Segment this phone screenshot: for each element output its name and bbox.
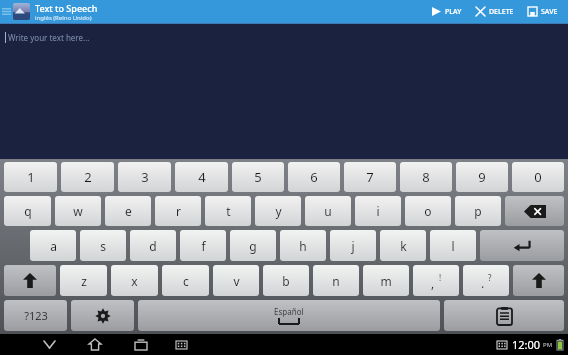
button[interactable]: n bbox=[313, 265, 359, 296]
staticText: 5 bbox=[254, 168, 262, 186]
staticText: 7 bbox=[366, 168, 374, 186]
staticText: ?123 bbox=[24, 308, 48, 323]
button[interactable]: t bbox=[205, 196, 251, 226]
staticText: a bbox=[50, 238, 57, 254]
button[interactable]: d bbox=[130, 230, 176, 261]
button[interactable]: j bbox=[330, 230, 376, 261]
staticText: l bbox=[451, 238, 455, 254]
staticText: d bbox=[149, 238, 157, 254]
staticText: ! bbox=[439, 272, 442, 283]
button[interactable]: f bbox=[180, 230, 226, 261]
staticText: i bbox=[376, 203, 380, 219]
button[interactable]: Shift bbox=[513, 265, 564, 296]
button[interactable]: g bbox=[230, 230, 276, 261]
button[interactable]: ?123 bbox=[4, 300, 67, 331]
button[interactable]: m bbox=[363, 265, 409, 296]
staticText: . bbox=[481, 275, 485, 291]
button[interactable]: 3 bbox=[118, 162, 171, 192]
staticText: b bbox=[282, 273, 290, 289]
staticText: PM bbox=[543, 341, 553, 349]
button[interactable]: q bbox=[4, 196, 51, 226]
button[interactable]: i bbox=[355, 196, 401, 226]
button[interactable]: Back bbox=[34, 334, 64, 355]
staticText: PLAY bbox=[445, 7, 462, 17]
button[interactable]: v bbox=[213, 265, 259, 296]
button[interactable]: r bbox=[155, 196, 201, 226]
staticText: Español bbox=[274, 306, 304, 317]
staticText: f bbox=[201, 238, 206, 254]
staticText: x bbox=[131, 273, 138, 289]
button[interactable]: 2 bbox=[61, 162, 114, 192]
button[interactable]: Enter bbox=[480, 230, 564, 261]
staticText: c bbox=[183, 273, 189, 289]
staticText: Text to Speech bbox=[35, 2, 98, 14]
button[interactable]: 9 bbox=[456, 162, 508, 192]
staticText: o bbox=[424, 203, 432, 219]
button[interactable]: k bbox=[380, 230, 426, 261]
staticText: n bbox=[332, 273, 340, 289]
staticText: 9 bbox=[478, 168, 486, 186]
button[interactable]: Shift bbox=[4, 265, 56, 296]
button[interactable]: Recent apps bbox=[126, 334, 156, 355]
staticText: m bbox=[380, 273, 392, 289]
staticText: 6 bbox=[310, 168, 318, 186]
button[interactable]: Navigate up bbox=[0, 0, 13, 23]
button[interactable]: Switch keyboard bbox=[168, 334, 194, 355]
button[interactable]: u bbox=[305, 196, 351, 226]
button[interactable]: 5 bbox=[232, 162, 284, 192]
button[interactable]: . bbox=[463, 265, 509, 296]
staticText: q bbox=[24, 203, 32, 219]
button[interactable]: Input settings bbox=[71, 300, 134, 331]
button[interactable]: l bbox=[430, 230, 476, 261]
staticText: r bbox=[176, 203, 181, 219]
staticText: u bbox=[324, 203, 332, 219]
button[interactable]: w bbox=[55, 196, 101, 226]
button[interactable]: c bbox=[162, 265, 209, 296]
button[interactable]: 8 bbox=[400, 162, 452, 192]
staticText: t bbox=[226, 203, 231, 219]
button[interactable]: o bbox=[405, 196, 451, 226]
button[interactable]: 1 bbox=[4, 162, 57, 192]
staticText: h bbox=[299, 238, 307, 254]
button[interactable]: 4 bbox=[175, 162, 228, 192]
button[interactable]: DELETE bbox=[469, 0, 521, 23]
staticText: ? bbox=[488, 272, 492, 283]
staticText: v bbox=[233, 273, 240, 289]
button[interactable]: 6 bbox=[288, 162, 340, 192]
button[interactable]: 0 bbox=[512, 162, 564, 192]
staticText: p bbox=[474, 203, 482, 219]
staticText: s bbox=[100, 238, 106, 254]
staticText: w bbox=[73, 203, 83, 219]
staticText: inglés (Reino Unido) bbox=[35, 14, 92, 22]
button[interactable]: e bbox=[105, 196, 151, 226]
staticText: e bbox=[125, 203, 132, 219]
staticText: k bbox=[400, 238, 407, 254]
button[interactable]: z bbox=[60, 265, 107, 296]
button[interactable]: p bbox=[455, 196, 501, 226]
button[interactable]: y bbox=[255, 196, 301, 226]
button[interactable]: Home bbox=[80, 334, 110, 355]
button[interactable]: Clipboard bbox=[444, 300, 564, 331]
staticText: 8 bbox=[422, 168, 430, 186]
button[interactable]: a bbox=[30, 230, 76, 261]
staticText: , bbox=[431, 275, 435, 291]
button[interactable]: b bbox=[263, 265, 309, 296]
button[interactable]: 7 bbox=[344, 162, 396, 192]
staticText: Write your text here... bbox=[8, 32, 90, 43]
button[interactable]: x bbox=[111, 265, 158, 296]
staticText: g bbox=[249, 238, 257, 254]
staticText: 3 bbox=[141, 168, 149, 186]
button[interactable]: SAVE bbox=[521, 0, 565, 23]
button[interactable]: Backspace bbox=[505, 196, 564, 226]
staticText: 0 bbox=[534, 168, 542, 186]
button[interactable]: h bbox=[280, 230, 326, 261]
staticText: SAVE bbox=[541, 7, 558, 17]
staticText: z bbox=[81, 273, 87, 289]
staticText: 12:00 bbox=[512, 337, 541, 352]
button[interactable]: s bbox=[80, 230, 126, 261]
staticText: j bbox=[351, 238, 355, 254]
button[interactable]: Español bbox=[138, 300, 440, 331]
button[interactable]: , bbox=[413, 265, 459, 296]
button[interactable]: PLAY bbox=[425, 0, 469, 23]
staticText: y bbox=[275, 203, 282, 219]
